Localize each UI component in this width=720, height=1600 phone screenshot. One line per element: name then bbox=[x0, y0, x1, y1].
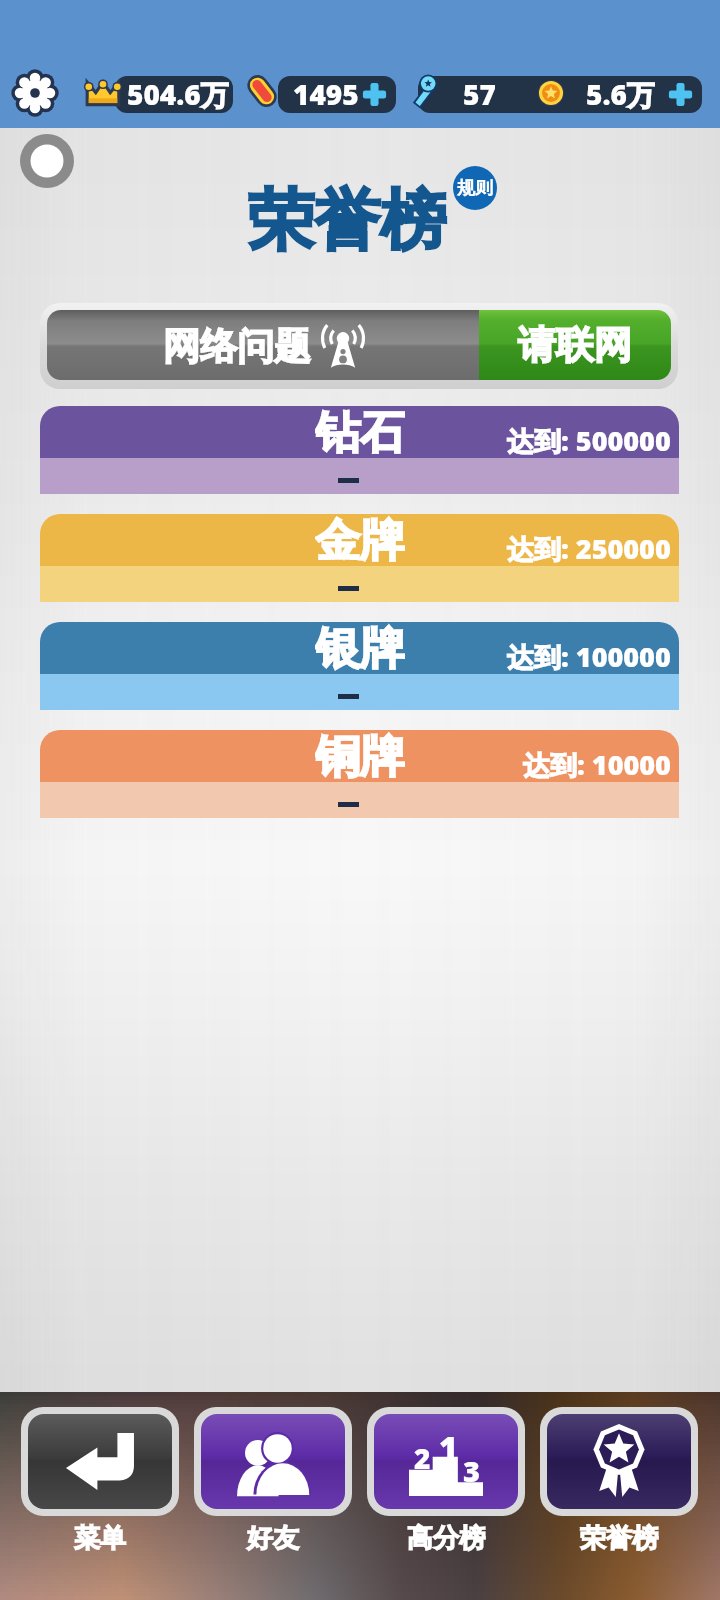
button[interactable]: 钻石 bbox=[40, 406, 679, 494]
button[interactable]: 504.6万 bbox=[115, 76, 233, 113]
staticText: 请联网 bbox=[518, 321, 632, 369]
button[interactable]: 银牌 bbox=[40, 622, 679, 710]
button[interactable]: 菜单 bbox=[21, 1407, 179, 1555]
staticText: 规则 bbox=[457, 177, 493, 200]
staticText: 网络问题 bbox=[163, 323, 311, 370]
staticText: 达到: 250000 bbox=[507, 530, 671, 567]
staticText: 504.6万 bbox=[127, 76, 229, 112]
staticText: 达到: 500000 bbox=[507, 422, 671, 459]
staticText: 菜单 bbox=[74, 1522, 126, 1555]
staticText: 钻石 bbox=[315, 406, 405, 457]
button[interactable]: 1495 bbox=[278, 76, 396, 113]
button[interactable]: 荣誉榜 bbox=[540, 1407, 698, 1555]
staticText: 铜牌 bbox=[315, 730, 405, 781]
staticText: 1495 bbox=[293, 76, 359, 112]
button[interactable]: 1 bbox=[367, 1407, 525, 1555]
button[interactable]: Back bbox=[20, 134, 74, 188]
button[interactable]: Settings bbox=[11, 69, 59, 117]
staticText: 达到: 100000 bbox=[507, 638, 671, 675]
staticText: 高分榜 bbox=[407, 1522, 485, 1555]
button[interactable]: 网络问题 bbox=[47, 310, 671, 380]
staticText: 达到: 10000 bbox=[523, 746, 671, 783]
button[interactable]: 好友 bbox=[194, 1407, 352, 1555]
staticText: 2 bbox=[414, 1439, 431, 1477]
staticText: 金牌 bbox=[315, 514, 405, 565]
staticText: 5.6万 bbox=[586, 76, 655, 112]
staticText: 57 bbox=[463, 76, 496, 112]
staticText: 1 bbox=[439, 1426, 458, 1470]
button[interactable]: 规则 bbox=[453, 166, 497, 210]
button[interactable]: 铜牌 bbox=[40, 730, 679, 818]
staticText: 3 bbox=[463, 1451, 480, 1490]
staticText: 荣誉榜 bbox=[580, 1522, 658, 1555]
button[interactable]: 金牌 bbox=[40, 514, 679, 602]
staticText: 荣誉榜 bbox=[248, 179, 446, 262]
staticText: 好友 bbox=[247, 1522, 299, 1555]
staticText: 银牌 bbox=[315, 622, 405, 673]
